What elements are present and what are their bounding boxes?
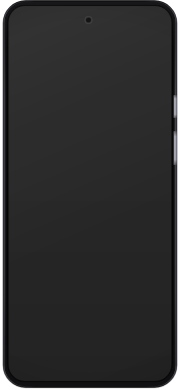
other: Smartphone product photo, screen off: [0, 0, 180, 390]
